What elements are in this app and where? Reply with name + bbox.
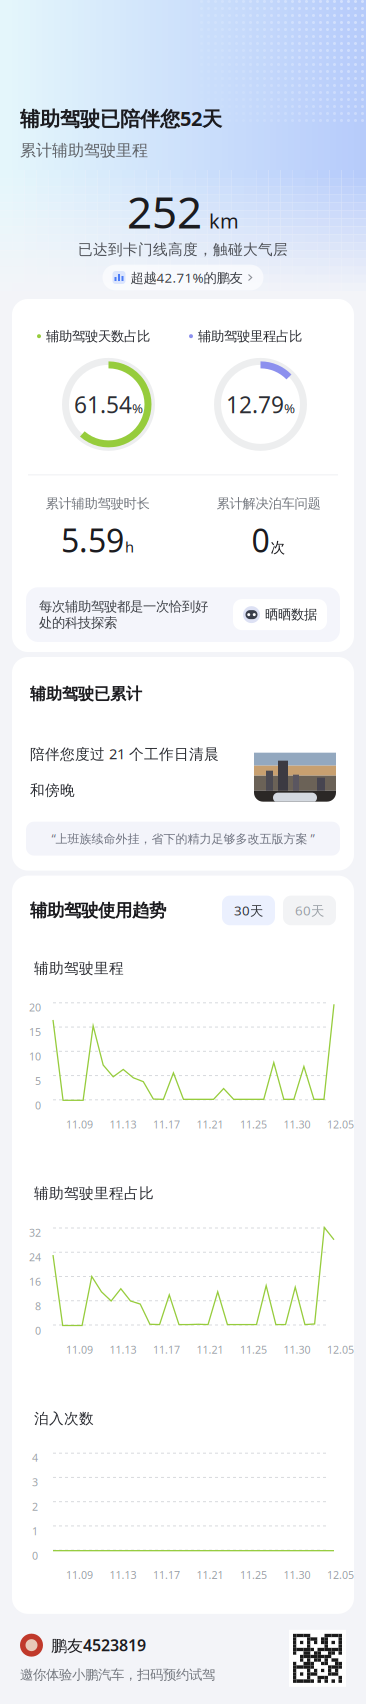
staticText: 11.25 <box>240 1568 267 1582</box>
staticText: 11.30 <box>283 1342 310 1357</box>
staticText: 10 <box>29 1049 41 1063</box>
staticText: 20 <box>29 1000 41 1014</box>
staticText: 辅助驾驶里程占比 <box>34 1184 154 1202</box>
staticText: 辅助驾驶已累计 <box>30 684 142 704</box>
staticText: 邀你体验小鹏汽车，扫码预约试驾 <box>20 1667 215 1683</box>
button[interactable]: 60天 <box>283 896 336 925</box>
staticText: 12.05 <box>327 1568 354 1582</box>
staticText: 辅助驾驶里程 <box>34 959 124 977</box>
staticText: 0 <box>35 1323 41 1338</box>
staticText: 累计辅助驾驶里程 <box>20 141 148 160</box>
staticText: 11.21 <box>196 1568 223 1582</box>
staticText: 辅助驾驶天数占比 <box>46 328 150 344</box>
staticText: 辅助驾驶里程占比 <box>198 328 302 344</box>
staticText: 累计辅助驾驶时长 <box>45 495 149 512</box>
staticText: 辅助驾驶已陪伴您52天 <box>20 105 222 132</box>
staticText: 30天 <box>234 902 263 919</box>
staticText: 5.59 <box>61 519 124 561</box>
staticText: 3 <box>32 1475 38 1489</box>
staticText: 累计解决泊车问题 <box>216 495 320 512</box>
staticText: 12.05 <box>327 1117 354 1131</box>
staticText: 24 <box>29 1250 41 1264</box>
staticText: 0 <box>251 519 269 561</box>
staticText: 0 <box>32 1549 38 1563</box>
staticText: 11.13 <box>109 1568 136 1582</box>
staticText: 12.79 <box>226 389 284 419</box>
staticText: 陪伴您度过 21 个工作日清晨 <box>30 744 219 763</box>
staticText: 已达到卡门线高度，触碰大气层 <box>78 241 288 259</box>
staticText: 5 <box>35 1074 41 1088</box>
staticText: 4 <box>32 1451 38 1465</box>
staticText: 2 <box>32 1500 38 1514</box>
staticText: 11.21 <box>196 1117 223 1131</box>
staticText: 11.09 <box>66 1568 93 1582</box>
button[interactable]: 超越42.71%的鹏友 <box>102 265 263 290</box>
staticText: 晒晒数据 <box>265 606 317 623</box>
staticText: 11.13 <box>109 1342 136 1357</box>
staticText: 11.09 <box>66 1342 93 1357</box>
staticText: 11.30 <box>283 1117 310 1131</box>
staticText: 12.05 <box>327 1342 354 1357</box>
staticText: 11.13 <box>109 1117 136 1131</box>
staticText: 15 <box>29 1025 41 1039</box>
staticText: 超越42.71%的鹏友 <box>130 269 242 286</box>
button[interactable]: 30天 <box>222 896 275 925</box>
staticText: 每次辅助驾驶都是一次恰到好 处的科技探索 <box>39 598 208 631</box>
staticText: h <box>125 537 134 556</box>
staticText: % <box>132 399 143 417</box>
staticText: 和傍晚 <box>30 781 75 799</box>
staticText: 次 <box>270 538 285 556</box>
staticText: 61.54 <box>74 389 132 419</box>
staticText: 11.21 <box>196 1342 223 1357</box>
staticText: 11.17 <box>153 1117 180 1131</box>
staticText: “上班族续命外挂，省下的精力足够多改五版方案 ” <box>51 831 314 847</box>
staticText: 11.25 <box>240 1117 267 1131</box>
staticText: 辅助驾驶使用趋势 <box>30 900 166 921</box>
staticText: km <box>209 207 239 234</box>
staticText: 60天 <box>295 902 324 919</box>
staticText: 1 <box>32 1524 38 1538</box>
staticText: % <box>284 399 295 417</box>
staticText: 0 <box>35 1098 41 1112</box>
staticText: 11.09 <box>66 1117 93 1131</box>
staticText: 泊入次数 <box>34 1410 94 1428</box>
staticText: 鹏友4523819 <box>51 1634 146 1656</box>
button[interactable]: 晒晒数据 <box>233 599 327 630</box>
staticText: 11.17 <box>153 1342 180 1357</box>
staticText: 252 <box>127 182 202 241</box>
staticText: 32 <box>29 1225 41 1240</box>
staticText: 11.25 <box>240 1342 267 1357</box>
staticText: 8 <box>35 1299 41 1313</box>
staticText: 11.30 <box>283 1568 310 1582</box>
staticText: 11.17 <box>153 1568 180 1582</box>
staticText: 16 <box>29 1274 41 1289</box>
